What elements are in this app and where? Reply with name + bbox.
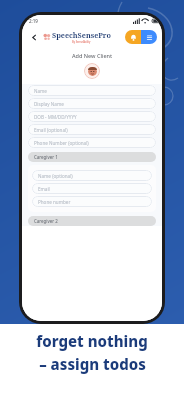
staticText: By SenseAbility (72, 40, 91, 44)
staticText: Email (38, 186, 50, 192)
staticText: Add New Client (22, 52, 162, 59)
staticText: – assign todos (39, 354, 146, 374)
button[interactable]: Caregiver 1 (28, 152, 156, 162)
button[interactable]: Email (optional) (28, 124, 156, 135)
button[interactable]: Back (27, 30, 41, 44)
button[interactable]: DOB - MM/DD/YYYY (28, 111, 156, 122)
button[interactable]: Phone Number (optional) (28, 137, 156, 148)
button[interactable]: Display Name (28, 98, 156, 109)
button[interactable]: Menu (141, 30, 157, 44)
button[interactable]: Name (28, 85, 156, 96)
button[interactable]: Name (optional) (32, 170, 152, 181)
button[interactable]: Email (32, 183, 152, 194)
staticText: Caregiver 2 (34, 218, 58, 224)
staticText: DOB - MM/DD/YYYY (34, 114, 77, 120)
staticText: Name (optional) (38, 173, 73, 179)
staticText: SpeechSensePro (52, 30, 111, 40)
button[interactable]: Phone number (32, 196, 152, 207)
staticText: Phone number (38, 199, 71, 205)
staticText: 2:19 (29, 18, 38, 24)
staticText: Display Name (34, 101, 64, 107)
staticText: Name (34, 88, 47, 94)
staticText: Caregiver 1 (34, 154, 58, 160)
staticText: Email (optional) (34, 127, 68, 133)
button[interactable]: Client photo (84, 63, 100, 79)
button[interactable]: Caregiver 2 (28, 216, 156, 226)
staticText: forget nothing (36, 331, 148, 351)
button[interactable]: Notifications (125, 30, 141, 44)
staticText: Phone Number (optional) (34, 140, 89, 146)
